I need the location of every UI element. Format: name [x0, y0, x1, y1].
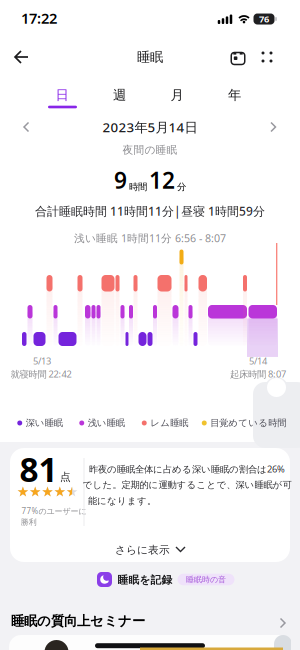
button[interactable]: More — [257, 47, 277, 67]
staticText: 就寝時間 22:42 — [10, 368, 71, 380]
staticText: 浅い睡眠 — [88, 417, 125, 429]
staticText: 勝利 — [21, 517, 37, 527]
button[interactable]: Previous day — [16, 117, 36, 137]
staticText: 昨夜の睡眠全体に占める深い睡眠の割合は26% — [89, 463, 285, 475]
staticText: 目覚めている時間 — [210, 417, 286, 429]
staticText: 9 — [114, 165, 127, 195]
staticText: 5/13 — [33, 355, 51, 367]
staticText: 分 — [177, 181, 186, 193]
staticText: 睡眠を記録 — [117, 573, 172, 586]
staticText: 81 — [19, 447, 57, 491]
button[interactable]: Back — [6, 42, 36, 72]
staticText: 月 — [170, 87, 183, 103]
staticText: でした。定期的に運動することで、深い睡眠が可 — [82, 479, 291, 491]
staticText: 77%のユーザーに — [21, 506, 86, 516]
staticText: 睡眠時の音 — [186, 575, 226, 584]
staticText: 12 — [149, 165, 175, 195]
staticText: 起床時間 8:07 — [230, 368, 286, 380]
staticText: 2023年5月14日 — [102, 118, 197, 136]
staticText: 17:22 — [21, 8, 57, 28]
staticText: 睡眠の質向上セミナー — [11, 613, 145, 629]
button[interactable]: 月 — [157, 85, 197, 105]
staticText: さらに表示 — [115, 543, 170, 556]
button[interactable]: 年 — [214, 85, 254, 105]
staticText: レム睡眠 — [150, 417, 188, 429]
button[interactable]: Next day — [263, 117, 283, 137]
staticText: 点 — [60, 470, 71, 483]
button[interactable]: 日 — [42, 85, 82, 105]
staticText: 5/14 — [249, 355, 267, 367]
staticText: 能になります。 — [88, 495, 156, 507]
staticText: 浅い睡眠 1時間11分 6:56 - 8:07 — [74, 231, 226, 245]
button[interactable]: Calendar — [226, 45, 250, 69]
button[interactable]: 睡眠の質向上セミナー — [11, 609, 289, 633]
staticText: 夜間の睡眠 — [122, 143, 177, 156]
staticText: 時間 — [129, 181, 147, 193]
staticText: 日 — [55, 87, 68, 103]
staticText: 睡眠 — [137, 49, 163, 65]
staticText: 週 — [113, 87, 126, 103]
staticText: 年 — [228, 87, 241, 103]
button[interactable]: 週 — [99, 85, 139, 105]
staticText: 合計睡眠時間 11時間11分|昼寝 1時間59分 — [35, 203, 265, 219]
staticText: 76 — [259, 13, 269, 25]
button[interactable]: さらに表示 — [95, 539, 205, 561]
button[interactable]: 睡眠を記録 — [93, 566, 239, 592]
staticText: 深い睡眠 — [26, 417, 63, 429]
